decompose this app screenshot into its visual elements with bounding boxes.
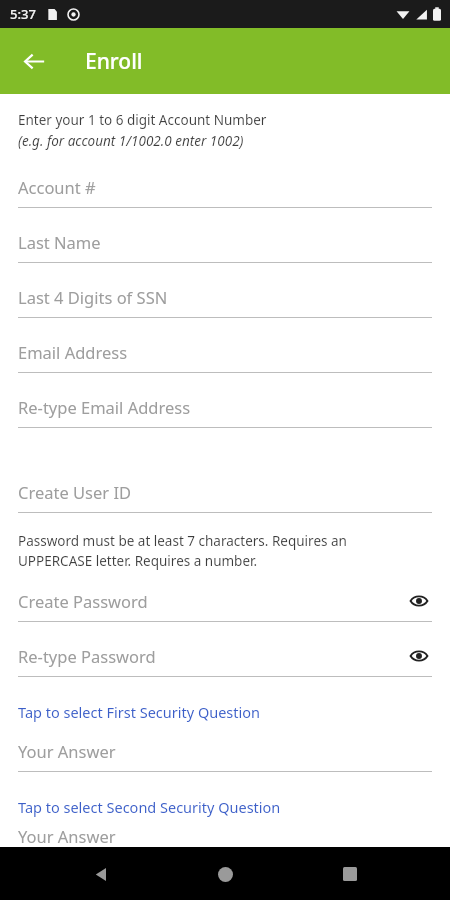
button[interactable]: Re-type Password xyxy=(0,635,450,690)
button[interactable]: Last 4 Digits of SSN xyxy=(0,276,450,331)
staticText: Enroll xyxy=(85,47,143,76)
staticText: 5:37 xyxy=(10,5,36,23)
button[interactable]: Home xyxy=(201,850,249,898)
button[interactable]: Tap to select Second Security Question xyxy=(0,793,450,821)
staticText: Tap to select First Security Question xyxy=(18,702,261,722)
button[interactable]: Recent apps xyxy=(326,850,374,898)
staticText: UPPERCASE letter. Requires a number. xyxy=(18,552,258,570)
button[interactable]: Back xyxy=(14,41,54,81)
button[interactable]: Create Password xyxy=(0,580,450,635)
button[interactable]: Last Name xyxy=(0,221,450,276)
button[interactable]: Your Answer xyxy=(0,730,450,785)
button[interactable]: Re-type Email Address xyxy=(0,386,450,441)
staticText: Re-type Email Address xyxy=(18,396,191,418)
button[interactable]: Back xyxy=(77,850,125,898)
staticText: Tap to select Second Security Question xyxy=(18,797,281,817)
button[interactable]: Tap to select First Security Question xyxy=(0,698,450,726)
staticText: Create User ID xyxy=(18,481,132,503)
button[interactable]: Your Answer xyxy=(0,825,450,847)
staticText: (e.g. for account 1/1002.0 enter 1002) xyxy=(18,132,244,150)
staticText: Last Name xyxy=(18,231,101,253)
button[interactable]: Account # xyxy=(0,166,450,221)
staticText: Your Answer xyxy=(18,825,116,847)
staticText: Account # xyxy=(18,176,96,198)
staticText: Email Address xyxy=(18,341,128,363)
staticText: Password must be at least 7 characters. … xyxy=(18,532,347,550)
staticText: Enter your 1 to 6 digit Account Number xyxy=(18,111,267,129)
button[interactable]: Email Address xyxy=(0,331,450,386)
staticText: Re-type Password xyxy=(18,645,156,667)
staticText: Your Answer xyxy=(18,740,116,762)
button[interactable]: Show password xyxy=(406,588,432,614)
staticText: Last 4 Digits of SSN xyxy=(18,286,168,308)
button[interactable]: Create User ID xyxy=(0,471,450,526)
staticText: Create Password xyxy=(18,590,148,612)
button[interactable]: Show password xyxy=(406,643,432,669)
